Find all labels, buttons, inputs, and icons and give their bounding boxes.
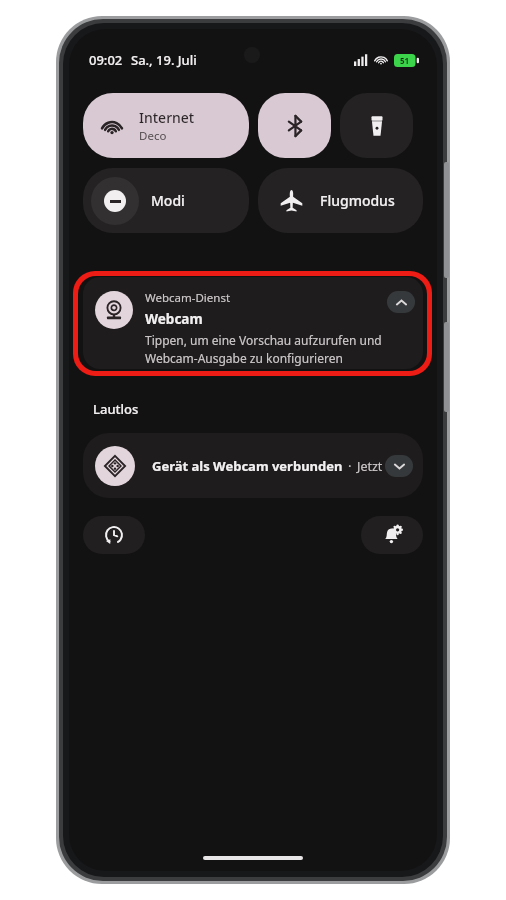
staticText: Lautlos bbox=[93, 400, 139, 418]
staticText: Webcam-Ausgabe zu konfigurieren bbox=[145, 350, 343, 366]
button[interactable]: Ausklappen bbox=[385, 455, 413, 477]
staticText: Sa., 19. Juli bbox=[131, 51, 197, 69]
staticText: Flugmodus bbox=[320, 191, 395, 210]
staticText: Tippen, um eine Vorschau aufzurufen und … bbox=[145, 332, 395, 348]
button[interactable]: Flugmodus bbox=[258, 168, 423, 233]
staticText: 51 bbox=[400, 55, 410, 66]
staticText: Jetzt bbox=[357, 458, 383, 475]
staticText: · bbox=[348, 457, 352, 475]
staticText: Gerät als Webcam verbunden bbox=[152, 457, 343, 475]
button[interactable]: Modi bbox=[83, 168, 249, 233]
staticText: Deco bbox=[139, 128, 167, 144]
button[interactable]: Webcam-Dienst bbox=[83, 277, 423, 369]
staticText: Modi bbox=[151, 191, 185, 210]
button[interactable]: Gerät als Webcam verbunden bbox=[83, 433, 423, 498]
staticText: Internet bbox=[139, 108, 195, 127]
staticText: Webcam-Dienst bbox=[145, 290, 231, 306]
button[interactable]: Einklappen bbox=[387, 291, 415, 313]
button[interactable]: Benachrichtigungsverlauf bbox=[83, 516, 145, 554]
button[interactable]: Internet bbox=[83, 93, 249, 158]
button[interactable]: Taschenlampe bbox=[340, 93, 413, 158]
button[interactable]: Bluetooth bbox=[258, 93, 331, 158]
staticText: 09:02 bbox=[89, 51, 123, 69]
button[interactable]: Benachrichtigungseinstellungen bbox=[361, 516, 423, 554]
staticText: Webcam bbox=[145, 310, 203, 328]
